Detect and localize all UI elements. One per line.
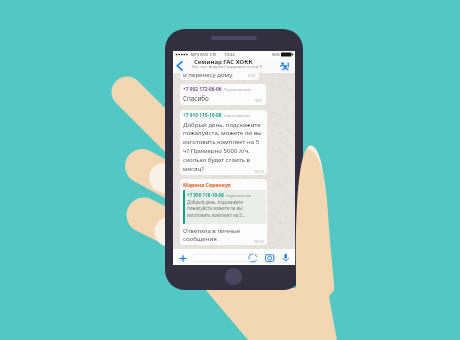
staticText: Марина Серенкул [183,181,231,188]
staticText: 50% [272,52,280,57]
staticText: 10:19 [254,239,264,244]
staticText: 9:47 [248,73,256,78]
staticText: и перенесу дому. [183,70,234,78]
staticText: +7 902 172-06-06 [183,86,222,93]
button[interactable]: Back [173,58,186,73]
button[interactable]: Sticker [248,253,258,263]
button[interactable]: Voice message [281,253,291,263]
staticText: пересланное [226,193,252,198]
staticText: Добрый день, подскажите пожалуйста может… [187,199,266,219]
staticText: Семинар ГАС ХОКК [194,58,253,66]
staticText: Кот, кот, Андрей Сидорович и ещё 9 [192,64,262,69]
staticText: 10:22 [224,52,235,58]
staticText: 9:51 [255,98,263,103]
button[interactable] [191,254,276,262]
staticText: Спасибо [183,94,209,103]
staticText: +7 910 115-10-08 [183,112,222,119]
button[interactable]: Attach [173,250,187,265]
button[interactable]: Group info [280,58,292,73]
staticText: пересланное [224,113,251,119]
staticText: Пересланное [224,87,252,93]
button[interactable]: Camera [265,253,275,263]
staticText: Добрый день, подскажите пожалуйста, може… [183,120,264,173]
staticText: Ответила в личные сообщения [183,226,267,243]
staticText: +7 950 116-10-08 [187,192,224,198]
staticText: MTS RUS LTE [191,52,217,57]
staticText: 10:12 [254,169,264,174]
